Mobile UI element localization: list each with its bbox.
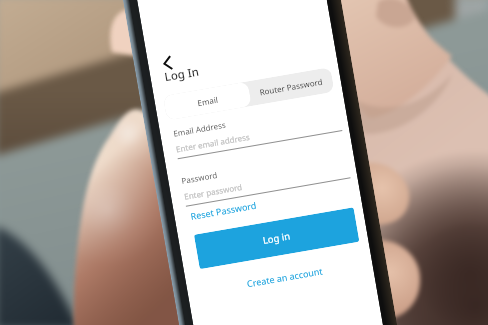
staticText: Reset Password	[190, 199, 258, 222]
staticText: Email	[196, 94, 219, 108]
staticText: Enter password	[183, 181, 243, 202]
button[interactable]: Router Password	[247, 67, 334, 106]
button[interactable]: Back	[154, 50, 180, 75]
button[interactable]: Email	[163, 81, 252, 121]
staticText: Password	[180, 169, 219, 186]
staticText: Log In	[163, 64, 200, 85]
staticText: Email Address	[172, 119, 226, 139]
button[interactable]: Create an account	[246, 264, 324, 289]
staticText: Enter email address	[175, 131, 251, 154]
button[interactable]: Log in	[194, 207, 359, 269]
staticText: Create an account	[246, 264, 324, 289]
staticText: Log in	[262, 229, 292, 247]
staticText: Router Password	[259, 76, 323, 97]
button[interactable]: Reset Password	[190, 199, 258, 222]
